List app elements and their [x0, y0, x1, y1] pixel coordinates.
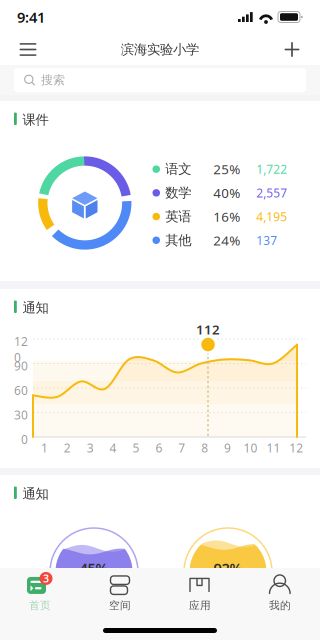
- staticText: 4: [110, 440, 117, 456]
- staticText: 9:41: [17, 7, 45, 27]
- staticText: 应用: [189, 599, 211, 612]
- staticText: 其他: [165, 232, 191, 248]
- button[interactable]: 搜索: [0, 65, 320, 95]
- staticText: 16%: [213, 208, 240, 225]
- staticText: 24%: [213, 231, 240, 249]
- staticText: 120: [14, 333, 28, 365]
- button[interactable]: 我的: [240, 568, 320, 616]
- staticText: 112: [196, 320, 220, 338]
- staticText: 1,722: [256, 161, 287, 177]
- staticText: 8: [201, 440, 208, 456]
- staticText: 1: [41, 440, 48, 456]
- staticText: 语文: [165, 161, 191, 177]
- staticText: 7: [178, 440, 185, 456]
- staticText: 0: [21, 431, 28, 447]
- staticText: 2,557: [256, 185, 287, 201]
- staticText: 60: [14, 382, 28, 398]
- staticText: 2: [64, 440, 71, 456]
- staticText: 137: [256, 232, 277, 248]
- button[interactable]: 应用: [160, 568, 240, 616]
- staticText: 英语: [165, 208, 191, 225]
- staticText: 滨海实验小学: [121, 41, 199, 58]
- staticText: 12: [289, 440, 303, 456]
- staticText: 40%: [213, 184, 240, 202]
- staticText: 9: [224, 440, 231, 456]
- staticText: 25%: [213, 160, 240, 178]
- staticText: 10: [243, 440, 257, 456]
- staticText: 30: [14, 407, 28, 423]
- staticText: 5: [132, 440, 139, 456]
- staticText: 90: [14, 358, 28, 374]
- staticText: 6: [155, 440, 162, 456]
- staticText: 3: [87, 440, 94, 456]
- staticText: 数学: [165, 185, 191, 201]
- staticText: 首页: [29, 599, 51, 612]
- button[interactable]: 空间: [80, 568, 160, 616]
- button[interactable]: 3: [0, 568, 80, 616]
- staticText: 空间: [109, 599, 131, 612]
- staticText: 4,195: [256, 209, 287, 224]
- staticText: 我的: [269, 599, 291, 612]
- staticText: 3: [43, 571, 49, 586]
- staticText: 92%: [213, 558, 242, 578]
- staticText: 搜索: [41, 73, 65, 87]
- staticText: 45%: [79, 558, 108, 578]
- staticText: 通知: [22, 299, 48, 316]
- staticText: 11: [266, 440, 280, 456]
- button[interactable]: Menu: [6, 34, 50, 65]
- staticText: 课件: [22, 111, 48, 128]
- button[interactable]: Add: [270, 34, 314, 65]
- staticText: 通知: [22, 485, 48, 502]
